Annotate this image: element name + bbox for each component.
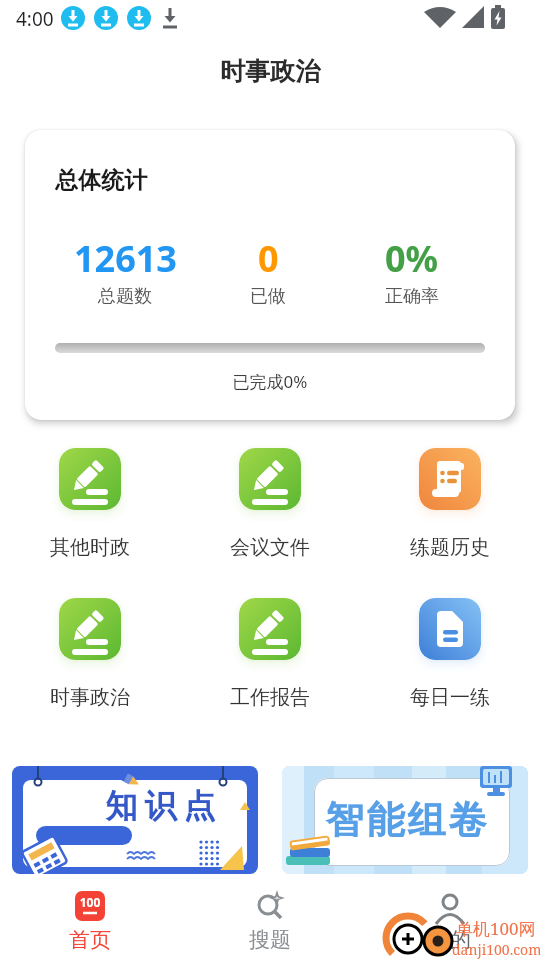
button[interactable]: 会议文件	[210, 448, 330, 560]
button[interactable]: 知识点	[12, 766, 258, 874]
staticText: 总体统计	[55, 166, 147, 195]
staticText: 知识点	[102, 786, 219, 826]
button[interactable]: 练题历史	[390, 448, 510, 560]
staticText: 正确率	[385, 285, 439, 308]
staticText: 4:00	[16, 6, 54, 32]
button[interactable]: 搜题	[210, 891, 330, 953]
button[interactable]: 时事政治	[30, 598, 150, 710]
button[interactable]: 每日一练	[390, 598, 510, 710]
staticText: 练题历史	[410, 535, 490, 560]
button[interactable]: 其他时政	[30, 448, 150, 560]
staticText: 总题数	[98, 285, 152, 308]
staticText: 0%	[385, 234, 439, 283]
button[interactable]: 智能组卷	[282, 766, 528, 874]
staticText: 首页	[69, 927, 111, 953]
staticText: 已做	[250, 285, 286, 308]
staticText: 我的	[429, 927, 471, 953]
button[interactable]: 工作报告	[210, 598, 330, 710]
staticText: 时事政治	[0, 56, 540, 87]
staticText: 单机100网	[456, 917, 536, 940]
staticText: 100	[75, 894, 105, 910]
staticText: 时事政治	[50, 685, 130, 710]
button[interactable]: 我的	[390, 891, 510, 953]
staticText: 智能组卷	[324, 796, 488, 844]
staticText: 12613	[74, 234, 177, 283]
button[interactable]: 100	[30, 891, 150, 953]
staticText: 其他时政	[50, 535, 130, 560]
staticText: 0	[258, 234, 279, 283]
staticText: danji100.com	[452, 940, 540, 959]
staticText: 会议文件	[230, 535, 310, 560]
staticText: 每日一练	[410, 685, 490, 710]
staticText: 工作报告	[230, 685, 310, 710]
staticText: 搜题	[249, 927, 291, 953]
staticText: 已完成0%	[25, 370, 515, 393]
